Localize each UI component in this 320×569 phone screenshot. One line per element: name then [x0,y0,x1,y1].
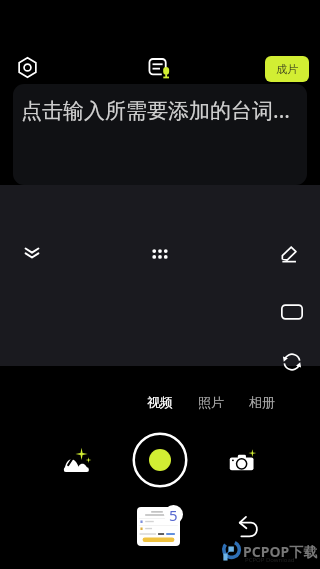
button[interactable]: Record [132,432,188,488]
button[interactable]: Settings [13,53,41,81]
button[interactable]: 视频 [138,387,182,417]
button[interactable]: 点击输入所需要添加的台词... [13,84,307,185]
button[interactable]: 成片 [265,56,309,82]
button[interactable]: 相册 [240,387,284,417]
staticText: 点击输入所需要添加的台词... [21,96,290,125]
button[interactable]: 5 [137,505,185,547]
button[interactable]: Aspect ratio [276,296,308,328]
button[interactable]: Edit [274,239,304,269]
button[interactable]: Teleprompter script [145,53,175,83]
button[interactable]: Take photo [224,443,260,479]
staticText: 5 [169,505,178,524]
staticText: PCPOP Download [245,556,295,564]
button[interactable]: Effects [59,443,95,479]
staticText: 视频 [147,394,173,410]
button[interactable]: Collapse [17,238,47,268]
button[interactable]: Switch camera [276,346,308,378]
button[interactable]: Undo [232,510,264,542]
button[interactable]: Reorder [145,239,175,269]
staticText: 相册 [249,394,275,410]
staticText: PCPOP下载 [243,542,318,561]
staticText: 照片 [198,394,224,410]
staticText: 成片 [276,62,298,76]
button[interactable]: 照片 [189,387,233,417]
